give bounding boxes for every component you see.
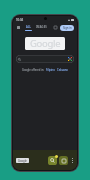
staticText: Google: [30, 37, 61, 50]
button[interactable]: Search by image: [16, 55, 74, 63]
staticText: ALL: [26, 25, 32, 29]
button[interactable]: Filipino: [46, 68, 55, 72]
button[interactable]: ALL: [25, 25, 32, 31]
button[interactable]: More options: [70, 156, 74, 165]
button[interactable]: Google apps: [53, 25, 58, 30]
button[interactable]: Tabs: [59, 156, 68, 165]
button[interactable]: Search by image: [68, 57, 72, 61]
button[interactable]: Sign in: [60, 25, 74, 31]
button[interactable]: Google: [16, 158, 29, 163]
button[interactable]: Cebuano: [57, 68, 68, 72]
staticText: Sign in: [63, 26, 72, 30]
staticText: 10:04: [16, 18, 24, 22]
button[interactable]: IMAGES: [36, 25, 47, 31]
staticText: Google offered in:: [22, 68, 44, 72]
button[interactable]: Menu: [16, 25, 21, 30]
staticText: Google: [18, 159, 27, 163]
button[interactable]: Search: [48, 156, 57, 165]
